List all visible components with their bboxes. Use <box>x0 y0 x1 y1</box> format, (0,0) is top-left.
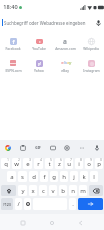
button[interactable]: q <box>1 158 10 169</box>
staticText: GIF <box>35 146 41 150</box>
button[interactable]: n <box>69 185 77 196</box>
button[interactable]: f <box>0 33 26 51</box>
button[interactable]: Settings <box>61 142 72 153</box>
button[interactable]: More <box>76 142 87 153</box>
button[interactable]: ?123 <box>1 198 13 210</box>
staticText: 9 <box>90 158 92 162</box>
button[interactable]: b <box>59 185 67 196</box>
button[interactable]: c <box>39 185 47 196</box>
button[interactable]: k <box>80 171 88 182</box>
button[interactable]: u <box>65 158 73 169</box>
staticText: w <box>14 160 19 168</box>
button[interactable]: Home <box>46 217 57 228</box>
staticText: h <box>62 173 66 181</box>
button[interactable]: p <box>95 158 103 169</box>
button[interactable]: Clipboard <box>17 142 28 153</box>
button[interactable]: o <box>85 158 93 169</box>
staticText: p <box>97 160 101 168</box>
staticText: 18:40 <box>3 3 18 11</box>
staticText: l <box>93 173 95 181</box>
button[interactable]: GIF <box>32 142 43 153</box>
button[interactable]: a <box>52 33 78 51</box>
button[interactable]: i <box>75 158 83 169</box>
staticText: n <box>71 187 75 195</box>
staticText: b <box>64 60 67 66</box>
button[interactable]: Suchbegriff oder Webadresse eingeben <box>0 16 104 28</box>
button[interactable]: Back <box>75 217 86 228</box>
staticText: YouTube <box>32 46 46 51</box>
button[interactable]: Recents <box>17 217 28 228</box>
button[interactable]: Shift <box>1 185 16 196</box>
staticText: q <box>4 160 8 168</box>
staticText: g <box>52 173 56 181</box>
staticText: k <box>82 173 86 181</box>
staticText: 1 <box>7 158 9 162</box>
staticText: a <box>10 173 14 181</box>
staticText: 8 <box>80 158 82 162</box>
staticText: Instagram <box>83 68 100 73</box>
staticText: f <box>43 173 46 181</box>
button[interactable]: y! <box>26 55 52 73</box>
button[interactable]: e <box>23 158 32 169</box>
staticText: Amazon.com <box>55 46 76 51</box>
button[interactable]: Enter <box>78 198 103 210</box>
staticText: 4 <box>40 158 42 162</box>
button[interactable]: f <box>40 171 48 182</box>
button[interactable]: z <box>55 158 63 169</box>
staticText: i <box>78 160 80 168</box>
staticText: z <box>58 160 61 168</box>
staticText: y! <box>38 61 41 66</box>
staticText: r <box>37 160 40 168</box>
button[interactable]: r <box>34 158 43 169</box>
staticText: ?123 <box>3 202 11 207</box>
button[interactable]: a <box>7 171 16 182</box>
button[interactable]: w <box>12 158 21 169</box>
staticText: s <box>21 173 24 181</box>
staticText: a <box>67 60 69 66</box>
button[interactable]: . <box>69 198 76 210</box>
button[interactable]: h <box>60 171 68 182</box>
button[interactable]: Voice input <box>91 142 102 153</box>
button[interactable]: d <box>29 171 38 182</box>
staticText: / <box>17 200 20 208</box>
button[interactable]: j <box>70 171 78 182</box>
staticText: 6 <box>60 158 62 162</box>
button[interactable]: t <box>45 158 53 169</box>
button[interactable]: e <box>52 55 78 73</box>
staticText: 0 <box>100 158 102 162</box>
staticText: 2 <box>18 158 20 162</box>
staticText: f <box>12 38 15 45</box>
button[interactable]: l <box>90 171 98 182</box>
button[interactable]: Backspace <box>89 185 103 196</box>
button[interactable]: g <box>50 171 58 182</box>
staticText: b <box>61 187 65 195</box>
staticText: e <box>26 160 30 168</box>
staticText: Yahoo <box>34 68 44 73</box>
staticText: v <box>51 187 55 195</box>
staticText: u <box>67 160 71 168</box>
button[interactable]: / <box>15 198 22 210</box>
staticText: o <box>87 160 91 168</box>
staticText: . <box>72 200 74 208</box>
staticText: Wikipedia <box>83 46 99 51</box>
button[interactable]: Instagram <box>78 55 104 73</box>
staticText: x <box>31 187 35 195</box>
staticText: Suchbegriff oder Webadresse eingeben <box>4 20 94 26</box>
button[interactable]: x <box>29 185 37 196</box>
button[interactable]: Google <box>2 142 13 153</box>
button[interactable]: Emoji <box>24 198 31 210</box>
staticText: eBay <box>61 68 69 73</box>
button[interactable]: ESPN <box>0 55 26 73</box>
staticText: a <box>63 37 67 45</box>
staticText: e <box>61 60 64 66</box>
button[interactable]: Stickers <box>47 142 58 153</box>
staticText: ESPN <box>10 62 16 65</box>
button[interactable]: m <box>79 185 87 196</box>
button[interactable]: Wikipedia <box>78 33 104 51</box>
button[interactable]: YouTube <box>26 33 52 51</box>
staticText: 3 <box>29 158 31 162</box>
button[interactable]: v <box>49 185 57 196</box>
button[interactable]: y <box>18 185 27 196</box>
button[interactable]: s <box>18 171 27 182</box>
